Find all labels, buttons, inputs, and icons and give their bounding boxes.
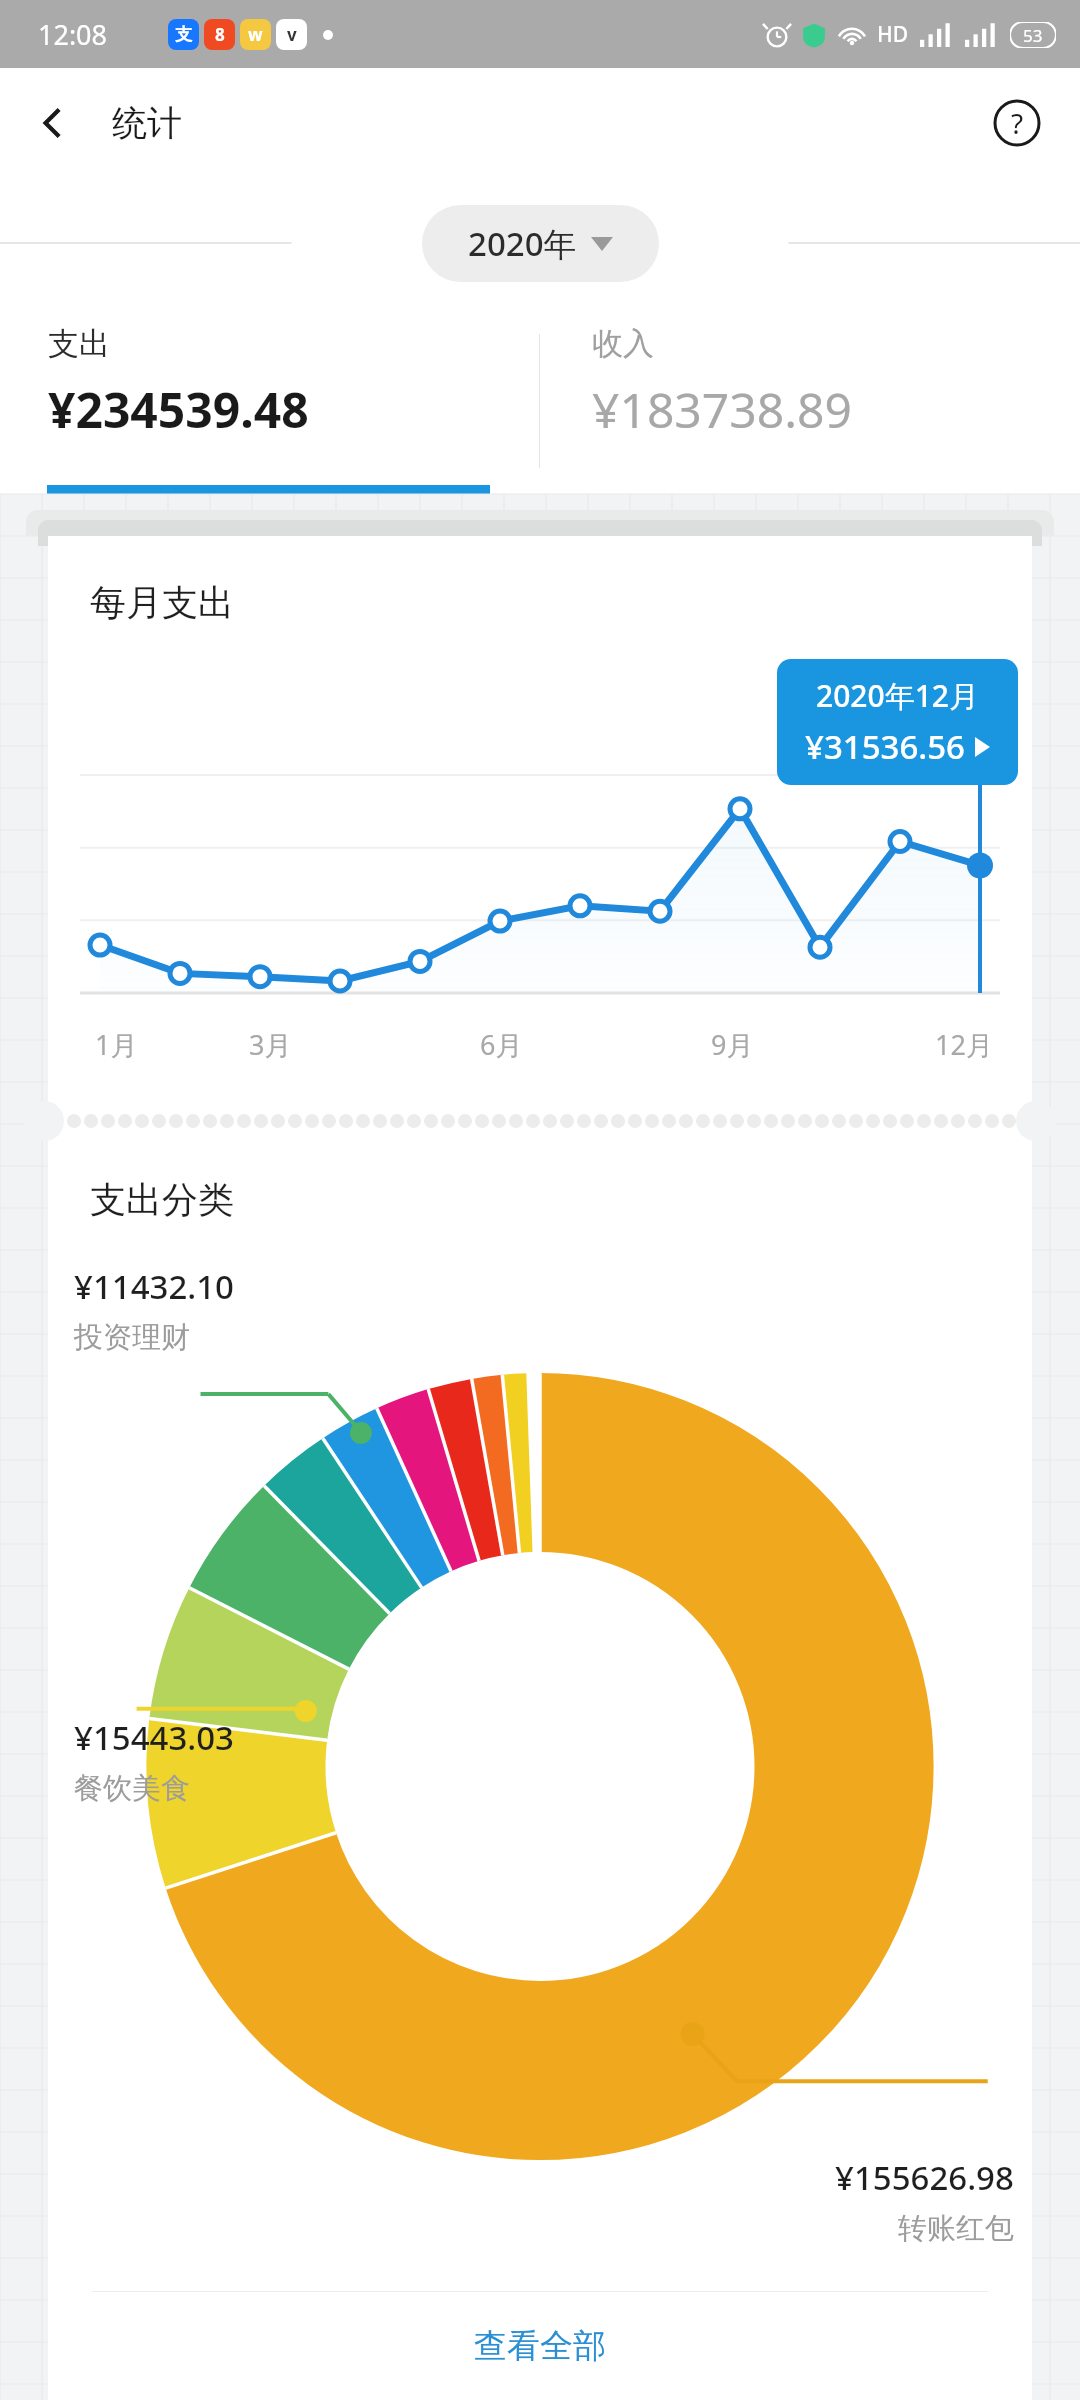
button[interactable]: 返回: [18, 88, 88, 158]
staticText: ¥234539.48: [48, 377, 309, 442]
staticText: w: [248, 23, 263, 46]
staticText: ?: [1011, 104, 1024, 142]
staticText: ¥155626.98: [835, 2155, 1014, 2200]
staticText: ¥31536.56: [805, 724, 965, 769]
button[interactable]: 2020年: [422, 205, 659, 282]
button[interactable]: 支出: [0, 308, 539, 494]
staticText: 53: [1023, 24, 1043, 47]
staticText: 12:08: [38, 16, 108, 53]
staticText: 2020年12月: [816, 675, 979, 716]
staticText: 收入: [592, 324, 654, 363]
staticText: HD: [877, 20, 909, 49]
staticText: 9月: [711, 1026, 754, 1063]
staticText: 每月支出: [90, 580, 234, 625]
staticText: 8: [215, 23, 225, 46]
staticText: 3月: [249, 1026, 292, 1063]
staticText: ¥15443.03: [74, 1715, 234, 1760]
staticText: ¥11432.10: [74, 1264, 234, 1309]
staticText: 支出分类: [90, 1177, 234, 1222]
staticText: 查看全部: [474, 2325, 606, 2367]
staticText: 12月: [935, 1026, 993, 1063]
staticText: ¥183738.89: [592, 377, 852, 442]
staticText: 投资理财: [74, 1319, 190, 1356]
button[interactable]: 帮助: [982, 88, 1052, 158]
staticText: v: [287, 23, 297, 46]
staticText: 转账红包: [898, 2210, 1014, 2247]
button[interactable]: 2020年12月: [777, 659, 1018, 785]
staticText: 统计: [112, 101, 182, 145]
button[interactable]: 查看全部: [48, 2292, 1032, 2400]
staticText: 2020年: [468, 221, 577, 266]
staticText: 1月: [95, 1026, 138, 1063]
staticText: 6月: [480, 1026, 523, 1063]
staticText: 餐饮美食: [74, 1770, 190, 1807]
button[interactable]: 收入: [540, 308, 1080, 494]
staticText: 支出: [48, 324, 110, 363]
staticText: 支: [175, 24, 192, 45]
